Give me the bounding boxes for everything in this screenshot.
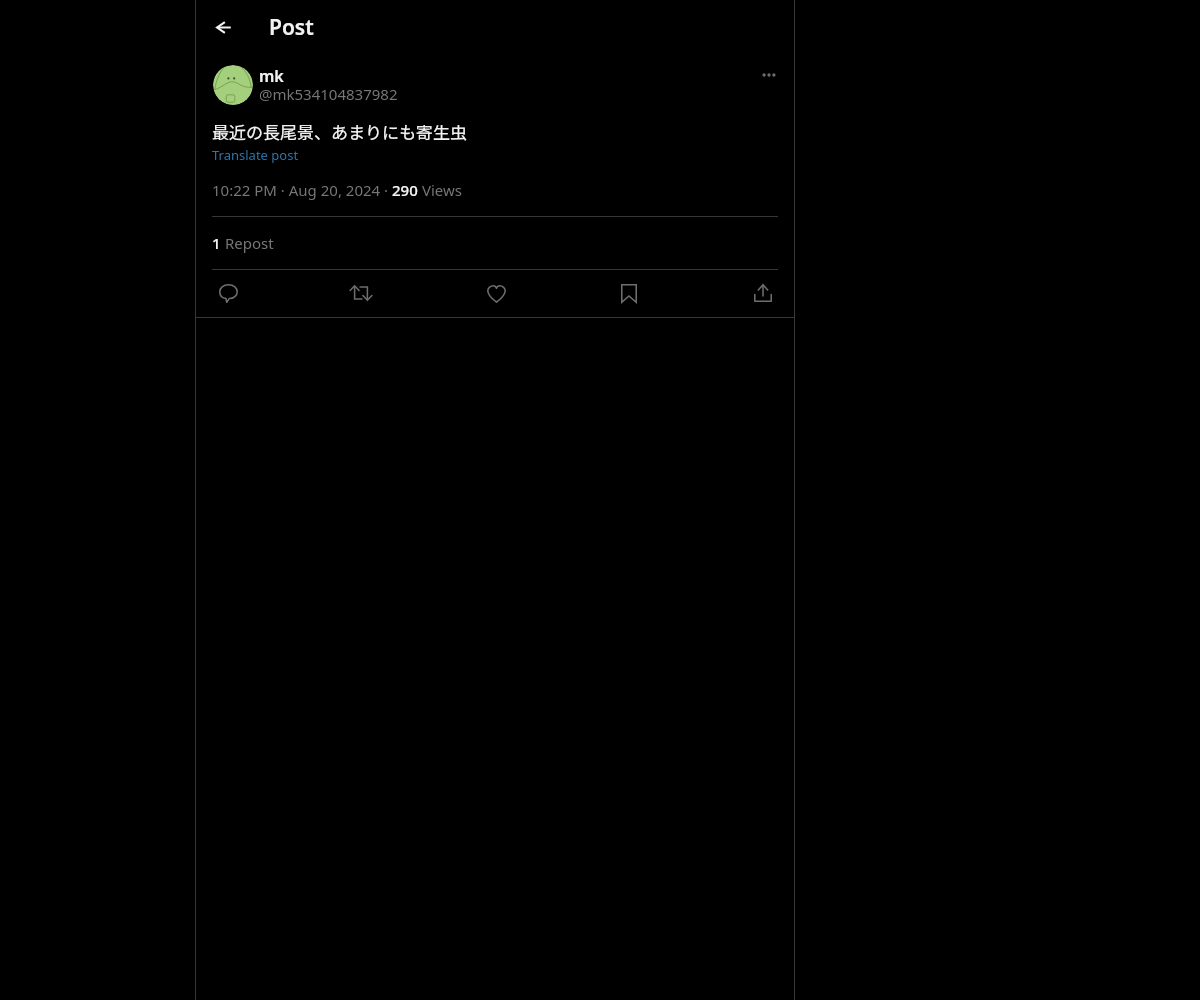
button[interactable]: Translate post xyxy=(212,146,299,164)
staticText: 最近の長尾景、あまりにも寄生虫 xyxy=(212,119,467,144)
button[interactable]: Reply xyxy=(211,276,245,310)
button[interactable]: Share xyxy=(746,276,780,310)
button[interactable]: Back xyxy=(206,10,240,44)
staticText: Post xyxy=(269,13,314,42)
button[interactable] xyxy=(213,65,253,105)
button[interactable]: mk xyxy=(259,65,284,87)
button[interactable]: Bookmark xyxy=(612,276,646,310)
button[interactable]: 1 xyxy=(212,233,274,253)
button[interactable]: Repost xyxy=(344,276,378,310)
button[interactable]: Like xyxy=(479,277,513,311)
button[interactable]: @mk534104837982 xyxy=(259,84,398,104)
button[interactable]: More xyxy=(752,58,786,92)
staticText: 1 xyxy=(212,233,225,253)
staticText: Views xyxy=(422,180,463,200)
staticText: 10:22 PM · Aug 20, 2024 · xyxy=(212,180,392,200)
staticText: Repost xyxy=(225,233,274,253)
staticText: 290 xyxy=(392,180,422,200)
